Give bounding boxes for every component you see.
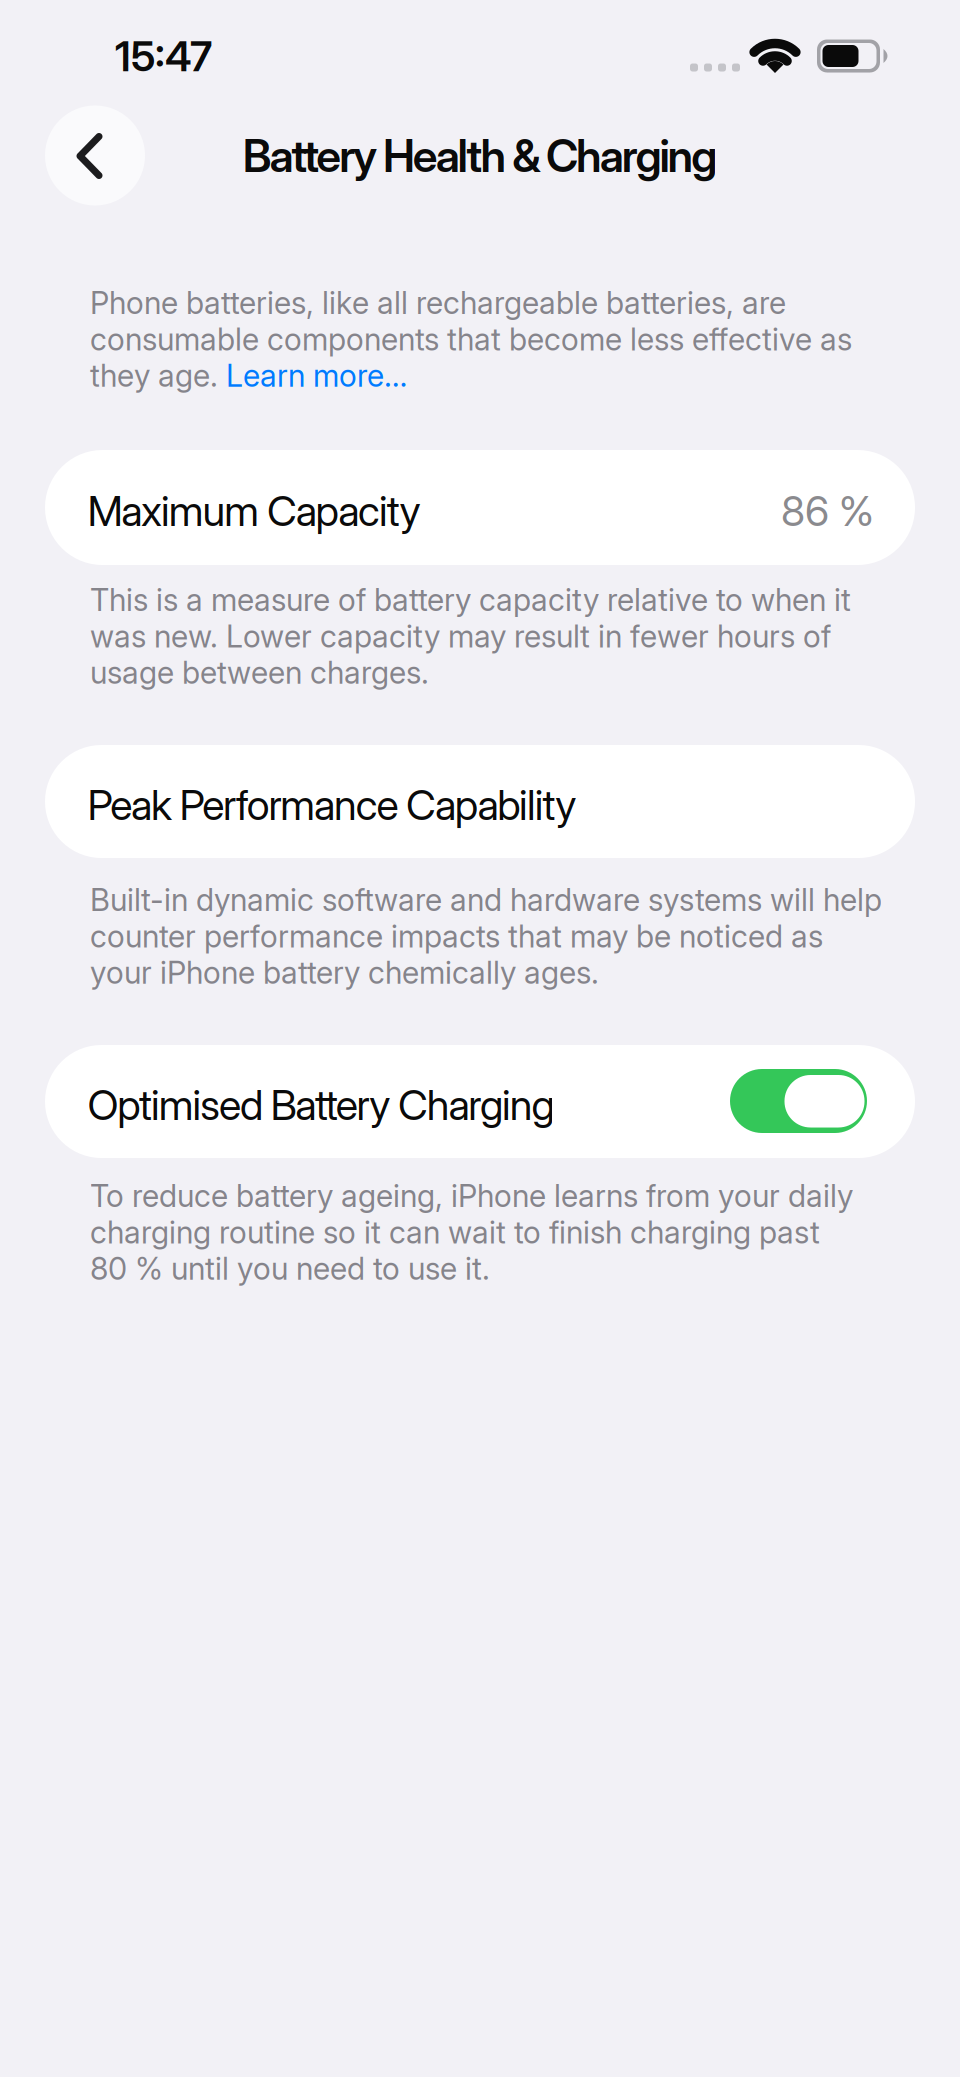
staticText: Optimised Battery Charging	[87, 1080, 554, 1130]
staticText: Maximum Capacity	[87, 486, 420, 536]
button[interactable]: Optimised Battery Charging	[730, 1069, 867, 1133]
button[interactable]: Learn more…	[226, 357, 407, 394]
staticText: was new. Lower capacity may result in fe…	[90, 618, 831, 655]
staticText: Phone batteries, like all rechargeable b…	[90, 284, 786, 321]
button[interactable]: Back	[45, 105, 145, 205]
staticText: usage between charges.	[90, 654, 429, 691]
staticText: Peak Performance Capability	[87, 780, 576, 830]
staticText: 80 % until you need to use it.	[90, 1250, 490, 1287]
staticText: they age.	[90, 357, 226, 394]
button[interactable]: Peak Performance Capability	[45, 745, 915, 858]
staticText: 86 %	[781, 486, 874, 536]
staticText: Battery Health & Charging	[243, 129, 717, 183]
staticText: Learn more…	[226, 357, 407, 394]
staticText: counter performance impacts that may be …	[90, 918, 823, 955]
staticText: This is a measure of battery capacity re…	[90, 581, 851, 618]
staticText: 15:47	[115, 31, 212, 81]
staticText: To reduce battery ageing, iPhone learns …	[90, 1177, 853, 1214]
staticText: your iPhone battery chemically ages.	[90, 954, 599, 991]
staticText: consumable components that become less e…	[90, 321, 852, 358]
staticText: charging routine so it can wait to finis…	[90, 1214, 820, 1251]
staticText: Built-in dynamic software and hardware s…	[90, 881, 882, 918]
